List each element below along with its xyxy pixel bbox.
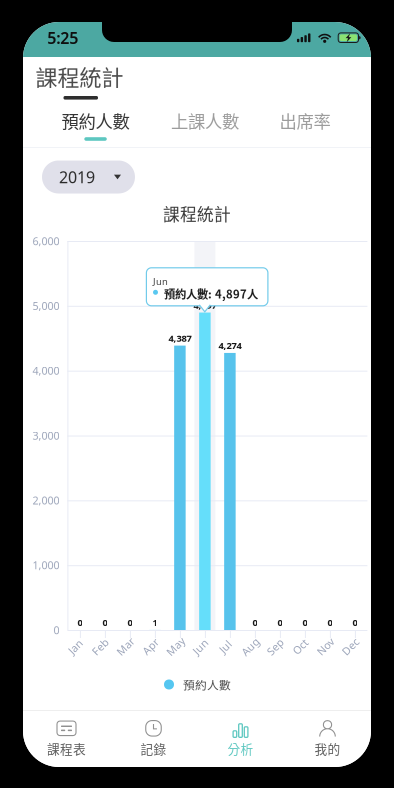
staticText: 我的 [314, 739, 340, 758]
staticText: Feb [91, 639, 110, 654]
staticText: 2019 [59, 166, 95, 188]
staticText: Aug [240, 639, 261, 654]
button[interactable]: 上課人數 [160, 105, 250, 135]
staticText: 分析 [227, 739, 253, 758]
button[interactable]: 預約人數 [50, 105, 140, 135]
staticText: 1,000 [32, 558, 59, 572]
staticText: 0 [252, 616, 257, 629]
staticText: Mar [115, 639, 135, 654]
staticText: Jul [219, 639, 232, 654]
staticText: 預約人數: 4,897人 [164, 285, 258, 302]
staticText: Sep [266, 639, 285, 654]
staticText: 4,274 [218, 339, 241, 352]
staticText: 4,387 [168, 332, 191, 344]
button[interactable]: 我的 [284, 714, 371, 762]
staticText: Apr [141, 639, 159, 654]
button[interactable]: 出席率 [260, 105, 350, 135]
staticText: 預約人數 [183, 676, 231, 693]
staticText: 6,000 [32, 234, 59, 248]
staticText: 課程統計 [163, 201, 231, 225]
staticText: 0 [327, 616, 332, 629]
button[interactable]: 分析 [197, 714, 284, 762]
staticText: 5:25 [47, 27, 78, 48]
staticText: 記錄 [140, 739, 166, 758]
staticText: Jun [192, 639, 209, 654]
staticText: 0 [302, 616, 307, 629]
staticText: 3,000 [32, 428, 59, 443]
staticText: Nov [316, 639, 335, 654]
staticText: 課程統計 [36, 60, 124, 92]
staticText: 出席率 [279, 108, 330, 133]
staticText: Oct [292, 639, 309, 654]
staticText: 預約人數 [61, 108, 129, 133]
staticText: 上課人數 [171, 108, 239, 133]
button[interactable]: 課程表 [23, 714, 110, 762]
staticText: 0 [53, 623, 59, 637]
staticText: 5,000 [32, 299, 59, 313]
staticText: Jun [153, 275, 168, 288]
staticText: 4,000 [32, 364, 59, 378]
staticText: May [165, 639, 186, 654]
staticText: 2,000 [32, 493, 59, 507]
button[interactable]: 記錄 [110, 714, 197, 762]
staticText: 0 [277, 616, 282, 629]
button[interactable]: 2019 [42, 160, 135, 193]
staticText: 0 [77, 616, 82, 629]
staticText: 0 [352, 616, 357, 629]
staticText: 1 [152, 616, 157, 629]
staticText: 4,897 [193, 299, 216, 311]
staticText: 0 [102, 616, 107, 629]
staticText: 0 [127, 616, 132, 629]
staticText: Dec [341, 639, 360, 654]
staticText: 課程表 [47, 739, 86, 758]
staticText: Jan [67, 639, 83, 654]
